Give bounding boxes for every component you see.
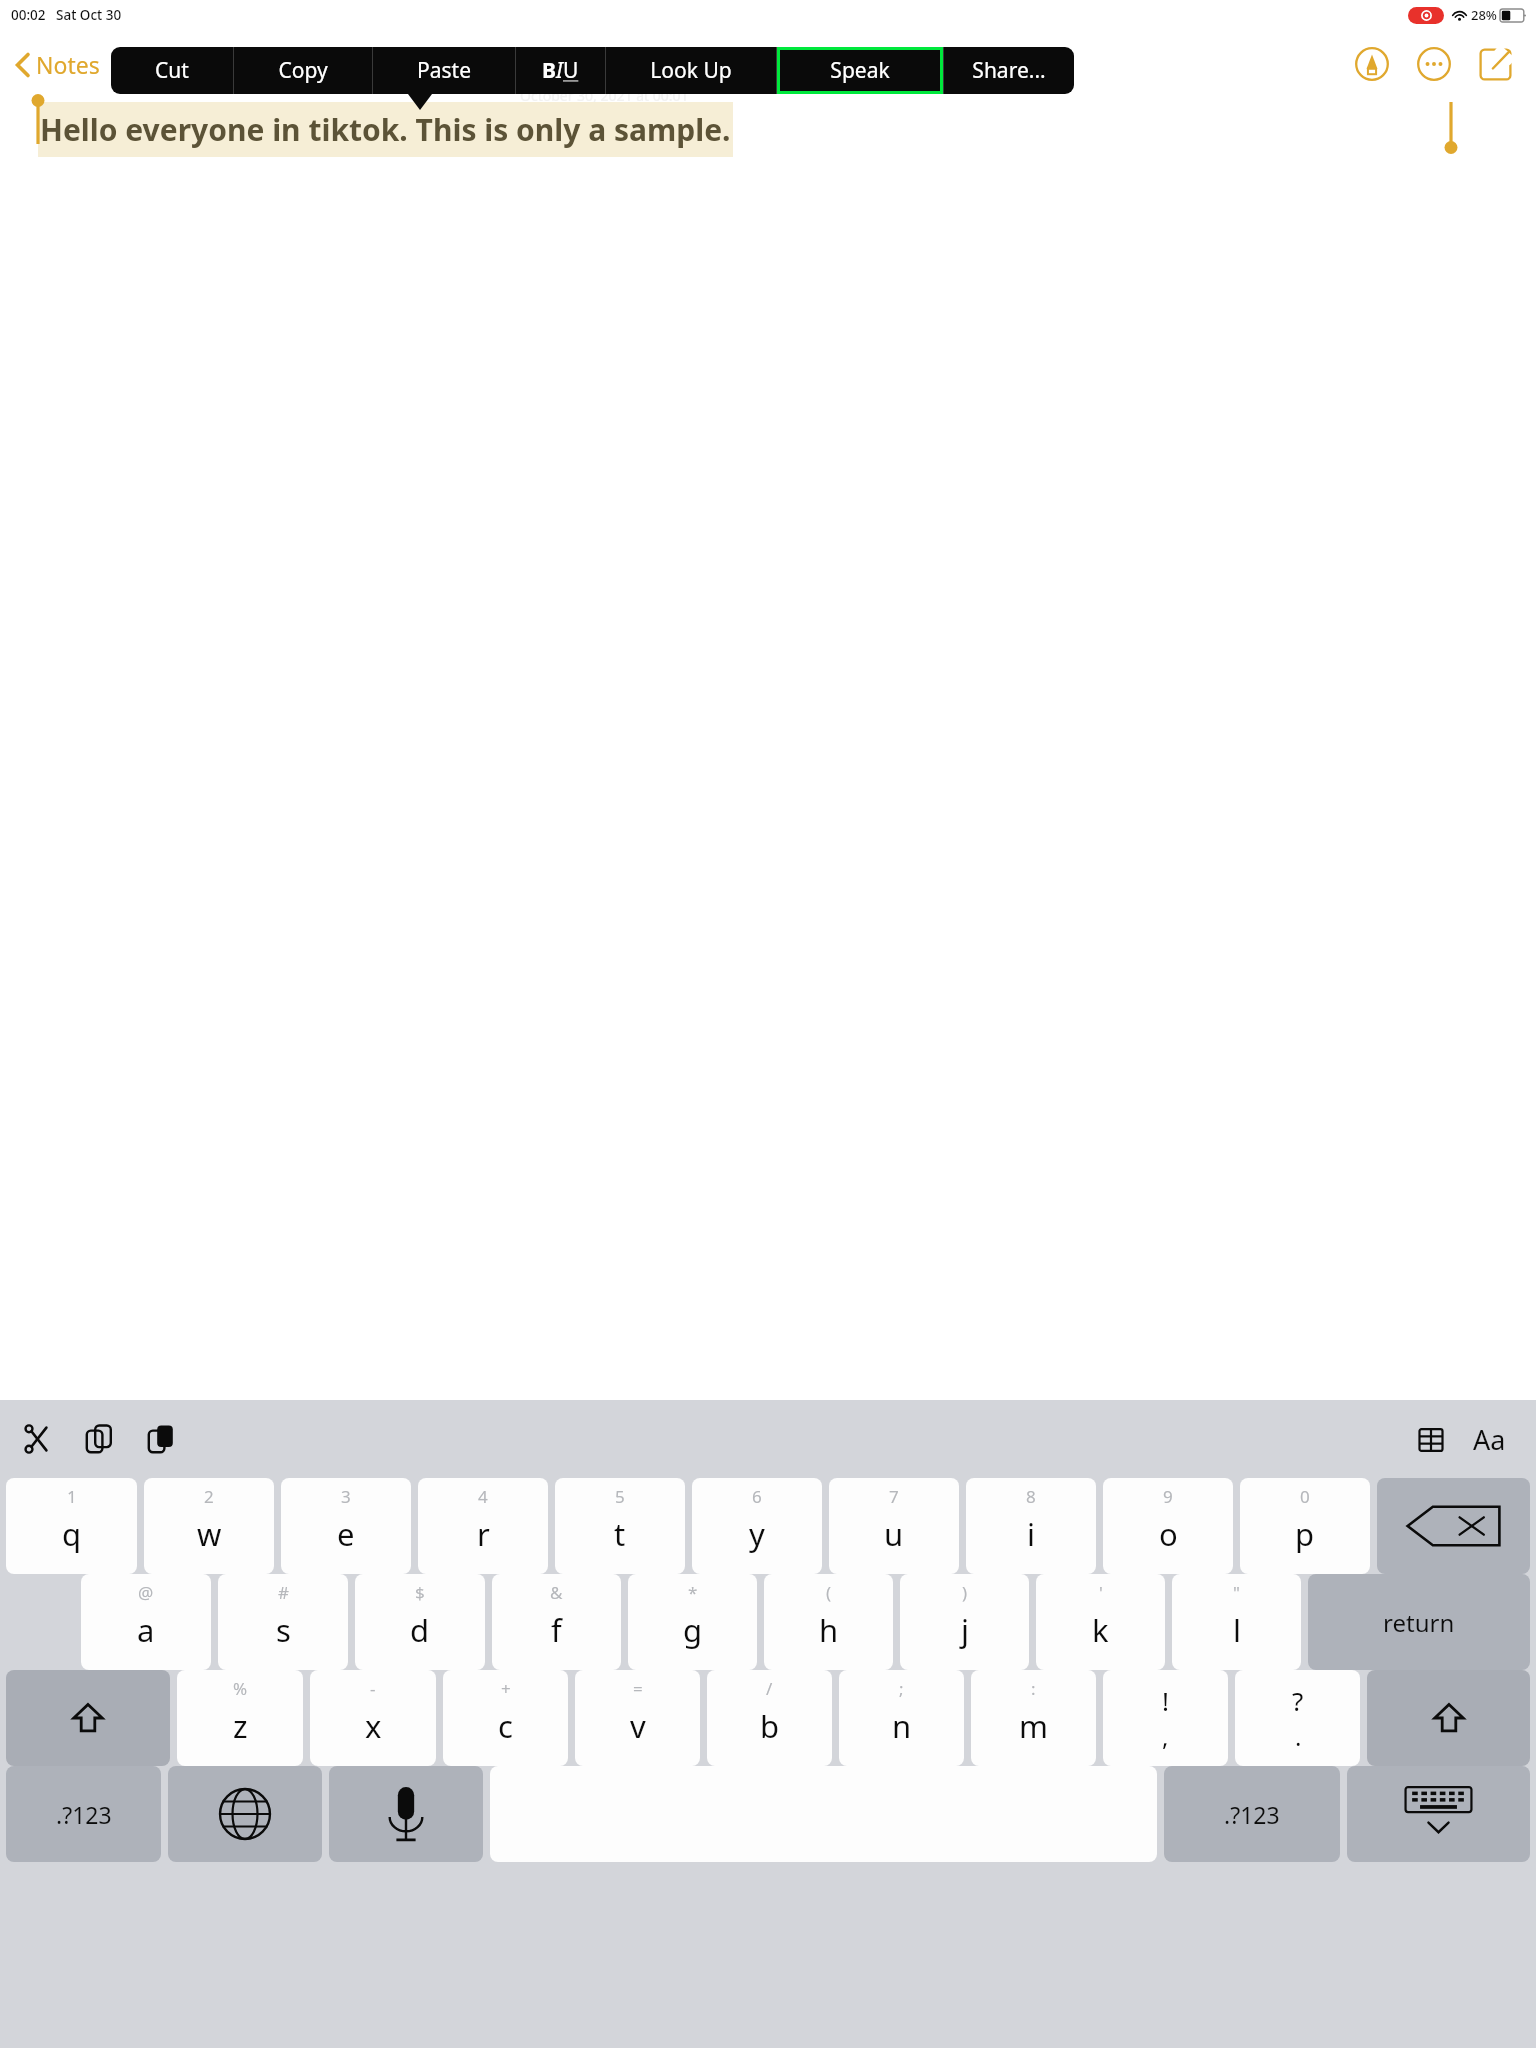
staticText: 2	[204, 1485, 214, 1508]
staticText: Look Up	[650, 56, 732, 85]
staticText: return	[1383, 1606, 1455, 1639]
staticText: g	[683, 1609, 703, 1651]
button[interactable]: Aa	[1467, 1415, 1512, 1464]
staticText: j	[961, 1609, 969, 1651]
button[interactable]: Compose	[1475, 44, 1516, 85]
button[interactable]: "	[1172, 1574, 1301, 1670]
staticText: B	[542, 56, 556, 85]
button[interactable]: @	[81, 1574, 211, 1670]
staticText: @	[138, 1581, 154, 1604]
staticText: %	[233, 1677, 248, 1700]
button[interactable]: 6	[692, 1478, 822, 1574]
staticText: Aa	[1473, 1421, 1506, 1458]
staticText: "	[1233, 1581, 1240, 1604]
staticText: 0	[1300, 1485, 1310, 1508]
staticText: .?123	[1224, 1799, 1280, 1830]
button[interactable]: Share...	[944, 47, 1074, 94]
staticText: U	[563, 56, 579, 85]
staticText: Hello everyone in tiktok. This is only a…	[40, 109, 731, 150]
staticText: 9	[1163, 1485, 1173, 1508]
button[interactable]: ;	[839, 1670, 964, 1766]
button[interactable]: /	[707, 1670, 832, 1766]
button[interactable]: 9	[1103, 1478, 1233, 1574]
button[interactable]: Cut	[16, 1417, 60, 1461]
button[interactable]: *	[628, 1574, 757, 1670]
staticText: ;	[899, 1677, 904, 1700]
button[interactable]: +	[443, 1670, 568, 1766]
staticText: !	[1162, 1683, 1169, 1718]
staticText: )	[962, 1581, 968, 1604]
staticText: d	[410, 1609, 430, 1651]
button[interactable]: 3	[281, 1478, 411, 1574]
button[interactable]	[1377, 1478, 1530, 1574]
button[interactable]: Dictate	[329, 1766, 483, 1862]
button[interactable]: return	[1308, 1574, 1530, 1670]
button[interactable]: ?	[1235, 1670, 1360, 1766]
staticText: 1	[67, 1485, 77, 1508]
staticText: 8	[1026, 1485, 1036, 1508]
button[interactable]: !	[1103, 1670, 1228, 1766]
staticText: 5	[615, 1485, 625, 1508]
button[interactable]: 2	[144, 1478, 274, 1574]
button[interactable]: shift	[1367, 1670, 1530, 1766]
button[interactable]: shift	[6, 1670, 170, 1766]
button[interactable]: 7	[829, 1478, 959, 1574]
button[interactable]: Copy	[78, 1417, 122, 1461]
staticText: 7	[889, 1485, 899, 1508]
staticText: v	[630, 1705, 646, 1747]
staticText: 6	[752, 1485, 762, 1508]
staticText: I	[556, 56, 563, 85]
staticText: i	[1027, 1513, 1035, 1555]
button[interactable]: .?123	[6, 1766, 161, 1862]
staticText: .?123	[56, 1799, 112, 1830]
button[interactable]: Speak	[780, 50, 940, 91]
button[interactable]: More	[1413, 43, 1455, 85]
button[interactable]: &	[492, 1574, 621, 1670]
staticText: +	[501, 1677, 511, 1700]
button[interactable]: Table	[1411, 1420, 1451, 1460]
button[interactable]: -	[310, 1670, 436, 1766]
button[interactable]: $	[355, 1574, 485, 1670]
staticText: s	[276, 1609, 291, 1651]
button[interactable]: '	[1036, 1574, 1165, 1670]
button[interactable]: %	[177, 1670, 303, 1766]
button[interactable]: Language	[168, 1766, 322, 1862]
staticText: ?	[1292, 1683, 1304, 1718]
staticText: l	[1233, 1609, 1241, 1651]
button[interactable]: Paste	[373, 47, 515, 94]
button[interactable]: B	[516, 47, 605, 94]
staticText: Cut	[155, 56, 189, 85]
staticText: b	[760, 1705, 780, 1747]
button[interactable]: 5	[555, 1478, 685, 1574]
button[interactable]: 8	[966, 1478, 1096, 1574]
button[interactable]: .?123	[1164, 1766, 1340, 1862]
staticText: c	[498, 1705, 513, 1747]
staticText: 00:02	[11, 6, 46, 24]
staticText: x	[365, 1705, 382, 1747]
button[interactable]: (	[764, 1574, 893, 1670]
button[interactable]: #	[218, 1574, 348, 1670]
button[interactable]: :	[971, 1670, 1096, 1766]
staticText: h	[819, 1609, 839, 1651]
button[interactable]: Notes	[0, 41, 116, 88]
button[interactable]: =	[575, 1670, 700, 1766]
button[interactable]: Cut	[111, 47, 233, 94]
button[interactable]: Markup	[1351, 43, 1393, 85]
button[interactable]: Hide keyboard	[1347, 1766, 1530, 1862]
button[interactable]: 0	[1240, 1478, 1370, 1574]
staticText: f	[551, 1609, 562, 1651]
staticText: Paste	[417, 56, 471, 85]
button[interactable]: )	[900, 1574, 1029, 1670]
staticText: Copy	[278, 56, 328, 85]
button[interactable]: Copy	[234, 47, 372, 94]
staticText: a	[137, 1609, 155, 1651]
button[interactable]: 1	[6, 1478, 137, 1574]
button[interactable]: Look Up	[606, 47, 776, 94]
button[interactable]: Paste	[140, 1417, 184, 1461]
staticText: m	[1019, 1705, 1048, 1747]
staticText: p	[1295, 1513, 1315, 1555]
staticText: 3	[341, 1485, 351, 1508]
button[interactable]: 4	[418, 1478, 548, 1574]
staticText: (	[826, 1581, 832, 1604]
